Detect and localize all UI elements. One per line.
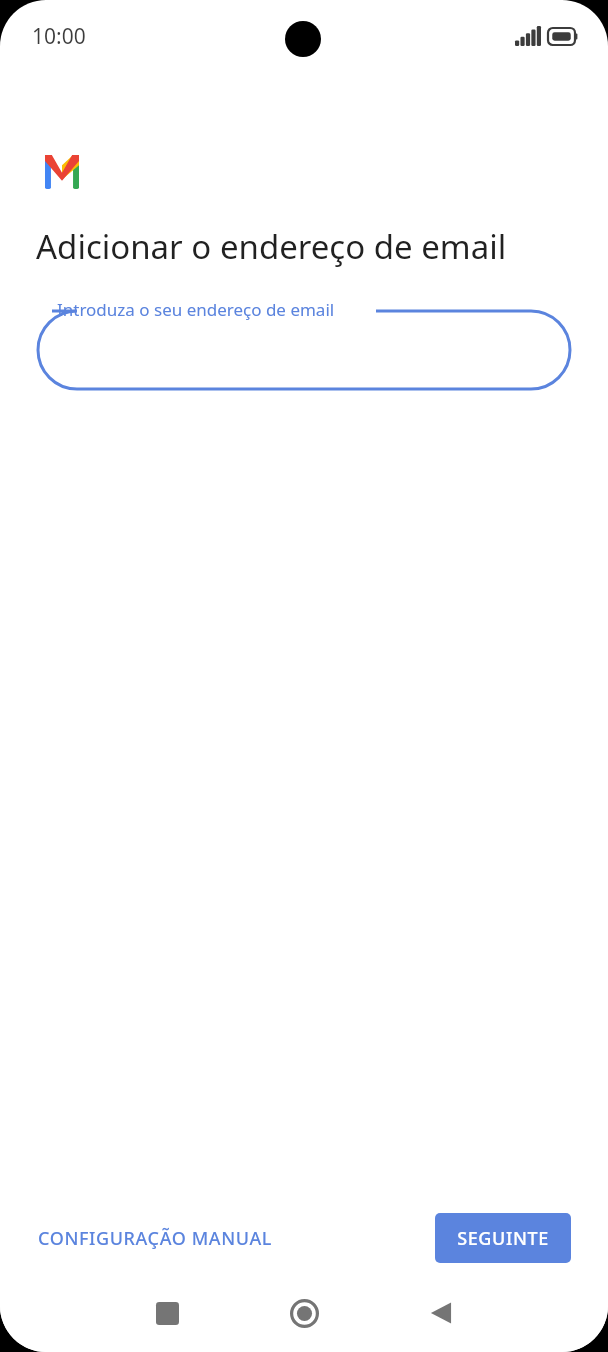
button[interactable]: CONFIGURAÇÃO MANUAL xyxy=(26,1216,285,1261)
staticText: SEGUINTE xyxy=(457,1226,549,1251)
button[interactable]: Home xyxy=(277,1286,331,1340)
button[interactable]: SEGUINTE xyxy=(435,1213,571,1263)
staticText: Adicionar o endereço de email xyxy=(36,224,507,269)
button[interactable]: Back xyxy=(414,1286,468,1340)
button[interactable]: Recent apps xyxy=(140,1286,194,1340)
button[interactable]: Introduza o seu endereço de email xyxy=(0,291,608,387)
staticText: 10:00 xyxy=(32,22,86,51)
staticText: CONFIGURAÇÃO MANUAL xyxy=(38,1226,273,1251)
staticText: Introduza o seu endereço de email xyxy=(57,298,335,321)
